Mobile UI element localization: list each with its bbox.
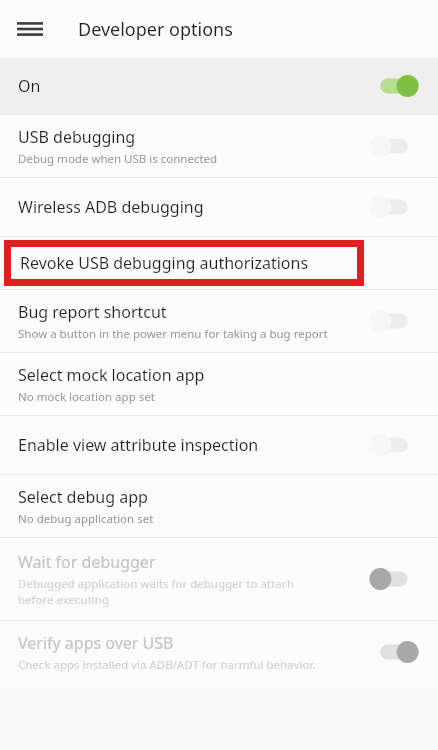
- button[interactable]: Verify apps over USB: [0, 621, 438, 683]
- staticText: USB debugging: [18, 126, 136, 148]
- staticText: Developer options: [78, 17, 233, 42]
- button[interactable]: Enable view attribute inspection: [0, 416, 438, 474]
- button[interactable]: Select debug app: [0, 475, 438, 537]
- button[interactable]: USB debugging: [0, 115, 438, 177]
- staticText: Wireless ADB debugging: [18, 196, 204, 218]
- staticText: Show a button in the power menu for taki…: [18, 326, 328, 342]
- button[interactable]: Wireless ADB debugging: [0, 178, 438, 236]
- button[interactable]: Wait for debugger: [0, 538, 438, 620]
- staticText: Revoke USB debugging authorizations: [20, 252, 309, 274]
- staticText: On: [18, 75, 41, 97]
- staticText: Check apps installed via ADB/ADT for har…: [18, 657, 316, 673]
- staticText: Debug mode when USB is connected: [18, 151, 218, 167]
- staticText: Verify apps over USB: [18, 632, 174, 654]
- button[interactable]: On: [0, 58, 438, 114]
- staticText: No debug application set: [18, 511, 154, 527]
- staticText: Bug report shortcut: [18, 301, 167, 323]
- button[interactable]: Select mock location app: [0, 353, 438, 415]
- staticText: Debugged application waits for debugger …: [18, 576, 328, 608]
- button[interactable]: Revoke USB debugging authorizations: [0, 237, 438, 289]
- staticText: No mock location app set: [18, 389, 155, 405]
- staticText: Select mock location app: [18, 364, 205, 386]
- staticText: Select debug app: [18, 486, 148, 508]
- button[interactable]: Open navigation menu: [8, 7, 52, 51]
- button[interactable]: Bug report shortcut: [0, 290, 438, 352]
- staticText: Enable view attribute inspection: [18, 434, 259, 456]
- staticText: Wait for debugger: [18, 551, 156, 573]
